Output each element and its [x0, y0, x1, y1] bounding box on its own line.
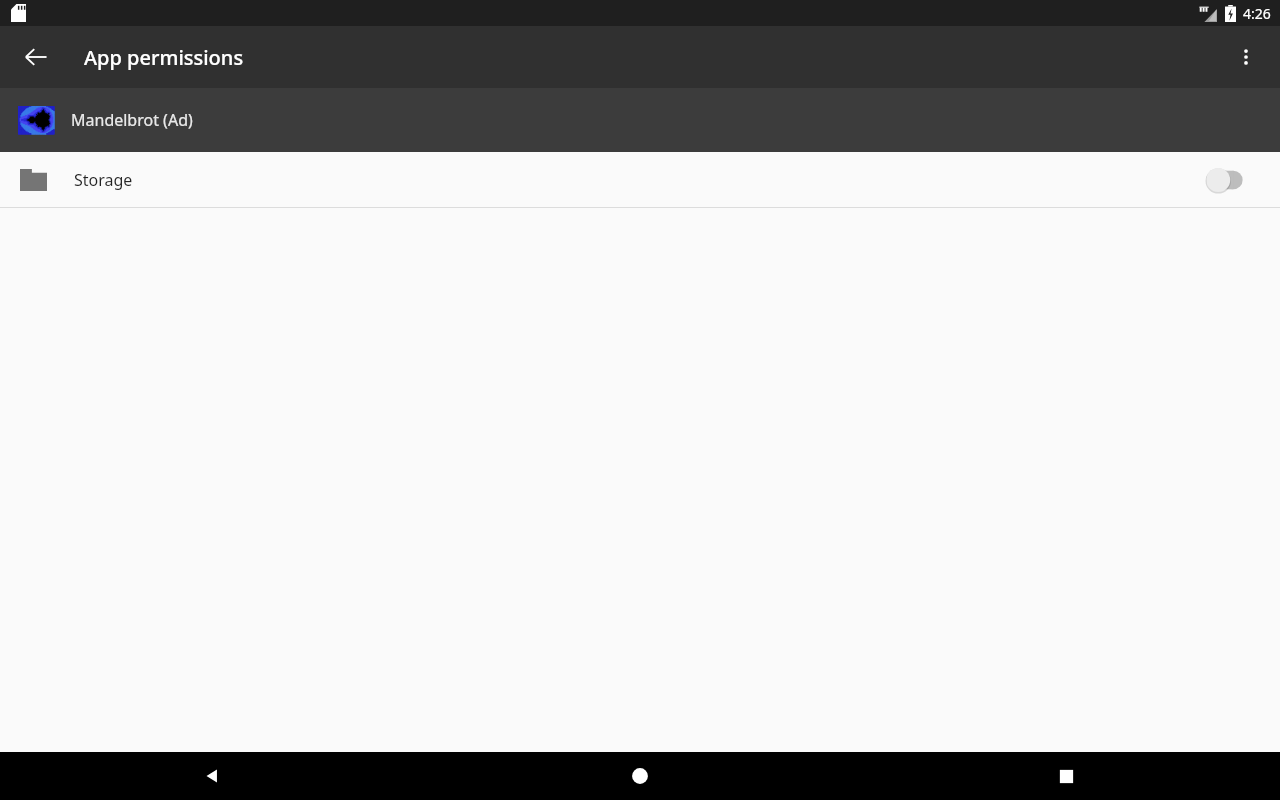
staticText: App permissions — [84, 44, 244, 71]
button[interactable]: Recent apps — [853, 752, 1280, 800]
button[interactable]: Storage permission toggle — [1200, 165, 1252, 195]
staticText: Storage — [74, 169, 1200, 191]
staticText: 4:26 — [1243, 4, 1271, 23]
button[interactable]: Navigate up — [12, 33, 60, 81]
button[interactable]: Mandelbrot (Ad) — [0, 88, 1280, 152]
button[interactable]: Home — [426, 752, 853, 800]
staticText: Mandelbrot (Ad) — [71, 109, 193, 131]
button[interactable]: Storage — [0, 152, 1280, 207]
button[interactable]: More options — [1222, 33, 1270, 81]
button[interactable]: Back — [0, 752, 426, 800]
